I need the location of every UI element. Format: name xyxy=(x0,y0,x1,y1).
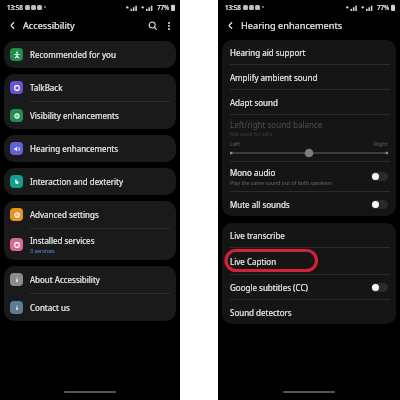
staticText: Hearing enhancements xyxy=(241,19,343,32)
staticText: Contact us xyxy=(30,302,70,313)
staticText: Hearing enhancements xyxy=(30,143,119,154)
button[interactable]: Amplify ambient sound xyxy=(222,65,396,89)
button[interactable]: Mono audio xyxy=(222,162,396,191)
staticText: TalkBack xyxy=(30,82,63,93)
button[interactable]: Installed services xyxy=(4,229,176,260)
button[interactable]: Hearing enhancements xyxy=(4,135,176,162)
button[interactable]: About Accessibility xyxy=(4,266,176,293)
staticText: Mono audio xyxy=(230,167,276,178)
staticText: Visibility enhancements xyxy=(30,110,119,121)
button[interactable]: Recommended for you xyxy=(4,41,176,68)
button[interactable]: Advanced settings xyxy=(4,201,176,228)
button[interactable]: Adapt sound xyxy=(222,90,396,114)
button[interactable]: Mute all sounds switch xyxy=(371,200,388,209)
staticText: Adapt sound xyxy=(230,97,278,108)
staticText: Not used for calls xyxy=(230,130,273,137)
staticText: Left xyxy=(230,140,241,148)
button[interactable]: Search xyxy=(145,18,160,33)
staticText: Sound detectors xyxy=(230,307,292,318)
staticText: 13:58 xyxy=(225,3,241,11)
button[interactable]: Visibility enhancements xyxy=(4,102,176,129)
button[interactable]: Mono audio switch xyxy=(371,172,388,181)
staticText: Google subtitles (CC) xyxy=(230,282,308,293)
staticText: Hearing aid support xyxy=(230,47,306,58)
button[interactable]: Mute all sounds xyxy=(222,192,396,216)
staticText: Installed services xyxy=(30,235,95,246)
button[interactable]: Live Caption xyxy=(222,248,396,274)
staticText: 13:58 xyxy=(7,3,23,11)
button[interactable]: Left/right sound balance xyxy=(222,115,396,161)
button[interactable]: Google subtitles (CC) xyxy=(222,275,396,299)
button[interactable]: Contact us xyxy=(4,294,176,321)
staticText: Amplify ambient sound xyxy=(230,72,318,83)
button[interactable]: Live transcribe xyxy=(222,223,396,247)
button[interactable]: TalkBack xyxy=(4,74,176,101)
staticText: About Accessibility xyxy=(30,274,100,285)
staticText: Live transcribe xyxy=(230,230,285,241)
staticText: 77% xyxy=(157,3,170,11)
staticText: Right xyxy=(374,140,388,148)
staticText: Left/right sound balance xyxy=(230,119,323,130)
button[interactable]: More options xyxy=(162,19,175,32)
button[interactable]: Back xyxy=(223,18,238,33)
staticText: Recommended for you xyxy=(30,49,116,60)
staticText: 77% xyxy=(377,3,390,11)
staticText: Live Caption xyxy=(230,256,277,267)
button[interactable]: Hearing aid support xyxy=(222,40,396,64)
staticText: Interaction and dexterity xyxy=(30,176,124,187)
staticText: 3 services xyxy=(30,247,55,254)
button[interactable]: Interaction and dexterity xyxy=(4,168,176,195)
staticText: Mute all sounds xyxy=(230,199,290,210)
staticText: Play the same sound out of both speakers xyxy=(230,179,333,186)
staticText: Advanced settings xyxy=(30,209,99,220)
staticText: Accessibility xyxy=(23,19,75,32)
button[interactable]: Back xyxy=(5,18,20,33)
button[interactable]: Google subtitles (CC) switch xyxy=(371,283,388,292)
button[interactable]: Sound detectors xyxy=(222,300,396,324)
